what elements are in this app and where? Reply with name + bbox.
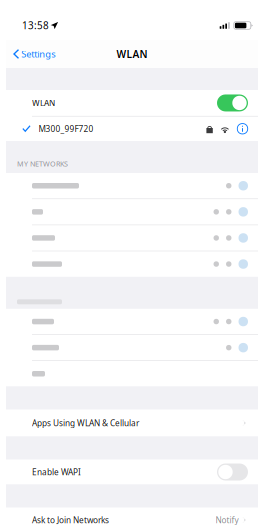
button[interactable] <box>6 225 258 251</box>
button[interactable] <box>6 309 258 334</box>
staticText: Notify <box>215 514 238 526</box>
staticText: M300_99F720 <box>38 123 93 134</box>
button[interactable] <box>6 361 258 386</box>
staticText: MY NETWORKS <box>17 159 68 168</box>
button[interactable]: M300_99F720 <box>6 116 258 141</box>
button[interactable]: Apps Using WLAN & Cellular <box>6 409 258 436</box>
staticText: Settings <box>21 48 55 60</box>
staticText: WLAN <box>32 97 55 109</box>
staticText: Enable WAPI <box>32 466 81 478</box>
staticText: Ask to Join Networks <box>32 514 109 526</box>
button[interactable] <box>6 173 258 198</box>
button[interactable]: WLAN <box>6 90 258 116</box>
button[interactable]: Ask to Join Networks <box>6 507 258 527</box>
staticText: WLAN <box>116 47 147 61</box>
button[interactable]: Settings <box>6 42 61 66</box>
button[interactable] <box>6 335 258 360</box>
button[interactable] <box>6 251 258 277</box>
staticText: Apps Using WLAN & Cellular <box>32 417 139 429</box>
staticText: 13:58 <box>22 19 49 32</box>
button[interactable] <box>6 199 258 225</box>
button[interactable]: Enable WAPI <box>6 459 258 484</box>
